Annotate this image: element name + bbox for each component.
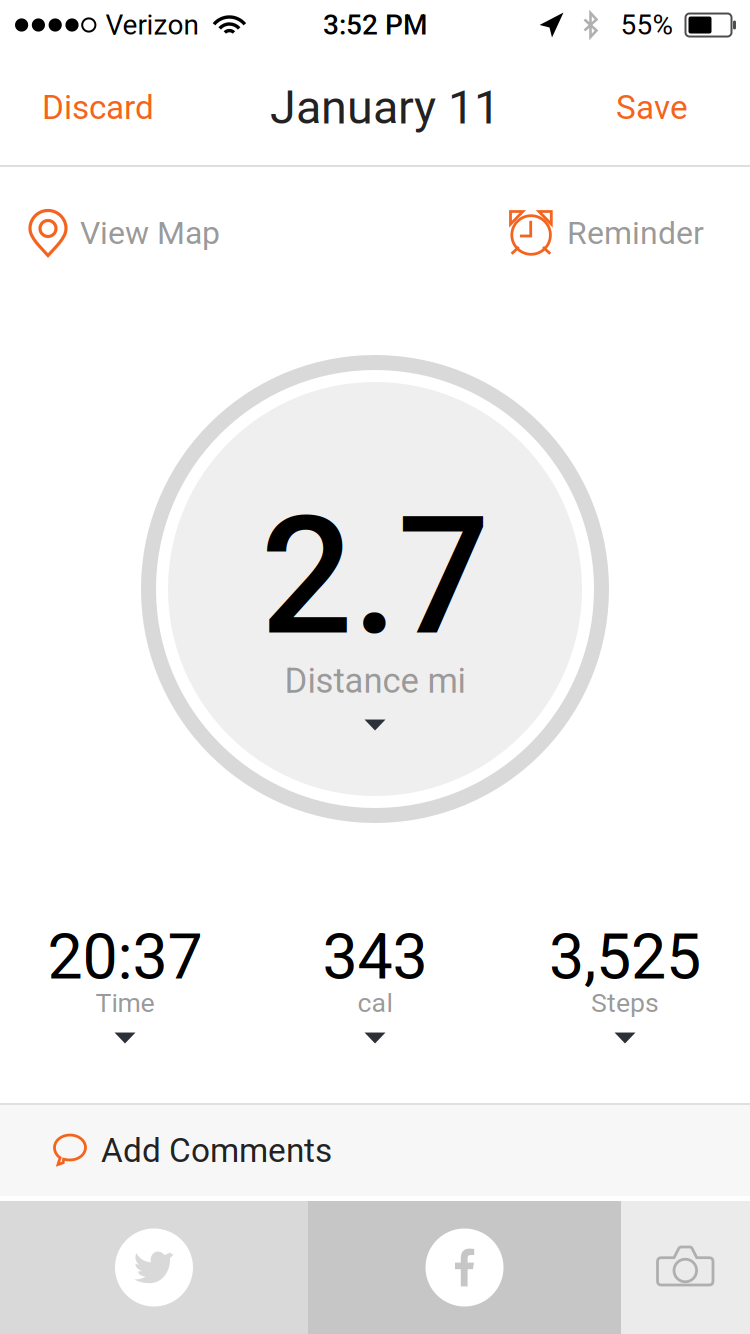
button[interactable]: 2.7 bbox=[141, 355, 609, 823]
button[interactable]: 343 bbox=[250, 823, 500, 1103]
staticText: 20:37 bbox=[47, 920, 202, 994]
staticText: cal bbox=[357, 987, 392, 1019]
button[interactable]: Add photo bbox=[621, 1201, 750, 1334]
staticText: Add Comments bbox=[101, 1131, 332, 1170]
staticText: Distance mi bbox=[284, 661, 465, 701]
staticText: View Map bbox=[80, 214, 220, 252]
button[interactable]: View Map bbox=[0, 167, 375, 285]
staticText: 55% bbox=[620, 9, 673, 41]
button[interactable]: Reminder bbox=[375, 167, 750, 285]
staticText: Verizon bbox=[105, 9, 198, 41]
staticText: Save bbox=[616, 88, 688, 127]
staticText: Time bbox=[95, 987, 154, 1019]
staticText: 3:52 PM bbox=[323, 9, 427, 41]
staticText: Discard bbox=[42, 88, 154, 127]
staticText: 3,525 bbox=[549, 920, 701, 994]
staticText: Reminder bbox=[567, 214, 704, 252]
button[interactable]: Save bbox=[608, 74, 696, 141]
staticText: January 11 bbox=[270, 80, 500, 135]
button[interactable]: 20:37 bbox=[0, 823, 250, 1103]
button[interactable]: 3,525 bbox=[500, 823, 750, 1103]
staticText: 343 bbox=[322, 920, 427, 994]
staticText: Steps bbox=[591, 987, 659, 1019]
button[interactable]: Discard bbox=[34, 74, 162, 141]
staticText: 2.7 bbox=[260, 482, 489, 672]
button[interactable]: Share to Twitter bbox=[0, 1201, 308, 1334]
button[interactable]: Share to Facebook bbox=[308, 1201, 621, 1334]
button[interactable]: Add Comments bbox=[0, 1105, 750, 1196]
